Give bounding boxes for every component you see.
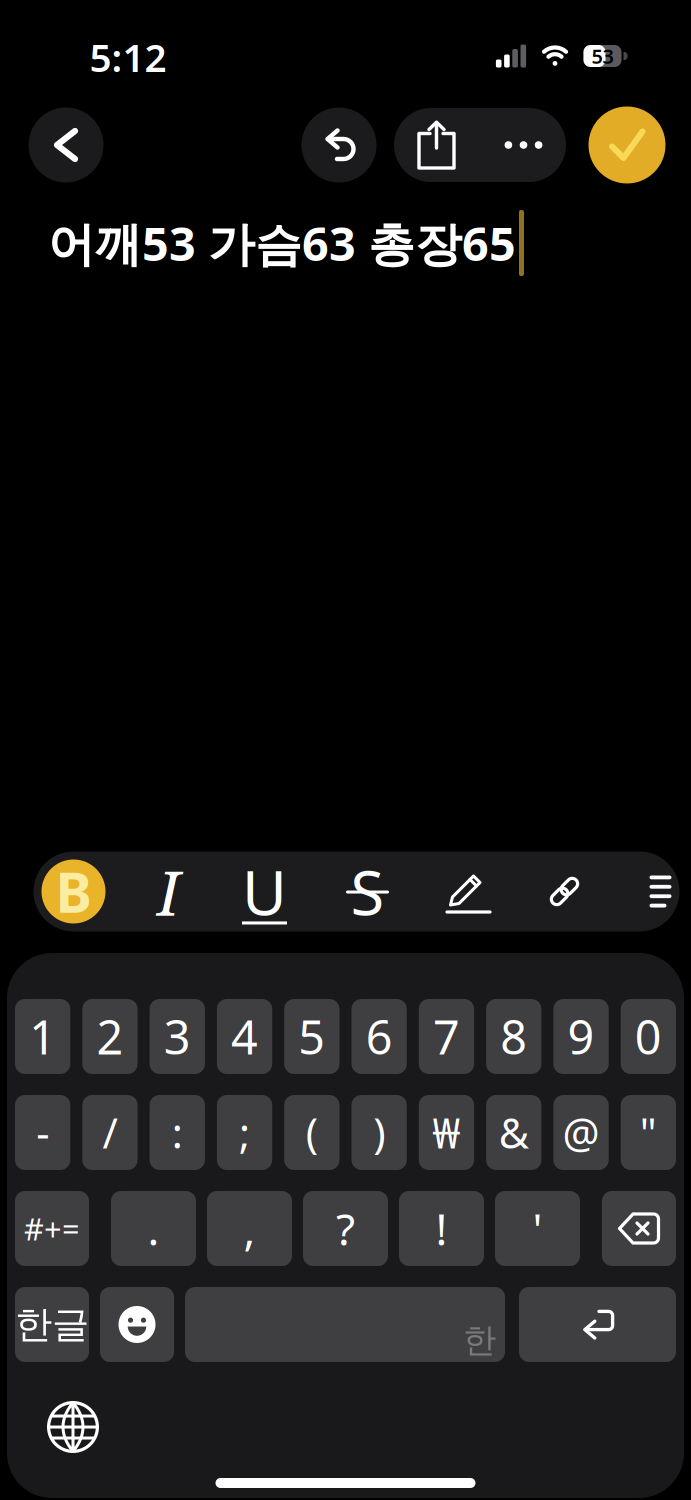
button[interactable]: 2 [82,999,138,1074]
staticText: 53 [591,43,613,69]
button[interactable]: Emoji [100,1287,174,1362]
staticText: ? [336,1199,355,1258]
button[interactable]: Next keyboard [47,1401,99,1453]
staticText: ) [373,1105,385,1160]
staticText: 어깨53 가슴63 총장65 [48,212,516,274]
button[interactable]: #+= [15,1191,89,1266]
staticText: U [242,851,287,932]
button[interactable]: 6 [351,999,407,1074]
button[interactable]: 7 [419,999,474,1074]
button[interactable]: : [150,1095,205,1170]
staticText: : [172,1105,183,1160]
button[interactable]: ( [284,1095,339,1170]
staticText: . [147,1199,159,1258]
staticText: 4 [231,1005,258,1067]
button[interactable]: ' [495,1191,580,1266]
button[interactable]: 0 [621,999,676,1074]
staticText: ( [306,1105,318,1160]
button[interactable]: Done [588,106,665,183]
staticText: & [499,1105,529,1160]
button[interactable]: ? [303,1191,388,1266]
staticText: ; [239,1105,250,1160]
staticText: / [102,1105,117,1160]
button[interactable]: " [621,1095,676,1170]
staticText: B [55,855,91,928]
staticText: I [157,849,180,934]
button[interactable]: 8 [486,999,541,1074]
button[interactable]: @ [553,1095,609,1170]
staticText: 2 [96,1005,123,1067]
staticText: 7 [433,1005,460,1067]
button[interactable]: , [207,1191,292,1266]
button[interactable]: Space [185,1287,505,1362]
button[interactable]: Underline [232,852,296,930]
staticText: 6 [366,1005,393,1067]
button[interactable]: 1 [15,999,70,1074]
button[interactable]: Strikethrough [335,852,399,930]
button[interactable]: 9 [553,999,609,1074]
button[interactable]: Return [519,1287,676,1362]
button[interactable]: 한글 [15,1287,89,1362]
staticText: 5:12 [89,31,166,83]
staticText: @ [562,1105,599,1160]
staticText: 8 [500,1005,527,1067]
button[interactable]: Paragraph [640,852,680,930]
button[interactable]: Link [529,852,599,930]
button[interactable]: - [15,1095,70,1170]
button[interactable]: Delete [602,1191,676,1266]
staticText: 9 [567,1005,594,1067]
button[interactable]: 4 [217,999,272,1074]
button[interactable]: . [111,1191,196,1266]
staticText: #+= [24,1208,80,1249]
staticText: 한 [463,1320,496,1361]
staticText: - [36,1105,49,1160]
button[interactable]: More [480,107,567,183]
staticText: 3 [164,1005,191,1067]
button[interactable]: Back [28,107,103,182]
button[interactable]: ! [399,1191,484,1266]
button[interactable]: ) [351,1095,407,1170]
staticText: 5 [298,1005,325,1067]
button[interactable]: / [82,1095,138,1170]
button[interactable]: Share [393,107,480,183]
button[interactable]: Italic [136,852,200,930]
staticText: ₩ [432,1105,460,1160]
staticText: 0 [635,1005,662,1067]
button[interactable]: Bold [41,855,105,928]
button[interactable]: 5 [284,999,339,1074]
button[interactable]: ₩ [419,1095,474,1170]
button[interactable]: & [486,1095,541,1170]
button[interactable]: Undo [301,107,376,182]
staticText: " [640,1105,657,1160]
button[interactable]: 3 [150,999,205,1074]
staticText: , [243,1199,255,1258]
button[interactable]: Handwriting [433,853,503,931]
staticText: ' [532,1199,542,1258]
staticText: ! [435,1199,447,1258]
staticText: 1 [29,1005,56,1067]
button[interactable]: ; [217,1095,272,1170]
staticText: S [350,851,384,932]
staticText: 한글 [15,1302,89,1347]
